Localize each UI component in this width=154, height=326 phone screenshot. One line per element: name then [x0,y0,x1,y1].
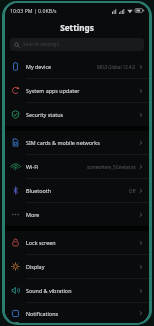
staticText: MIUI Global 12.4.0 [97,64,136,70]
staticText: somewhere_5Gnetwork [87,164,136,170]
other: Open Security status [138,112,144,118]
staticText: Sound & vibration [26,287,72,294]
staticText: Wi-Fi [26,163,39,170]
staticText: Lock screen [26,239,56,246]
staticText: Notifications [26,310,59,317]
other: Open System apps updater [138,88,144,94]
staticText: Settings [60,22,94,33]
other: Open More [138,212,144,218]
other: Open Bluetooth [138,188,144,194]
button[interactable]: My device [5,55,149,79]
other: Open Sound & vibration [138,288,144,294]
button[interactable]: SIM cards & mobile networks [5,131,149,155]
staticText: Off [129,188,136,194]
button[interactable]: Lock screen [5,231,149,255]
button[interactable]: Security status [5,103,149,126]
staticText: Bluetooth [26,187,52,194]
button[interactable]: Display [5,255,149,279]
staticText: System apps updater [26,87,80,94]
other: Open Wi-Fi [138,164,144,170]
staticText: Search settings [23,41,59,48]
button[interactable]: Bluetooth [5,179,149,203]
staticText: Security status [26,111,64,118]
other: Open SIM cards & mobile networks [138,140,144,146]
other: Open Lock screen [138,240,144,246]
button[interactable]: System apps updater [5,79,149,103]
other: Open Display [138,264,144,270]
staticText: More [26,211,40,218]
button[interactable]: Wi-Fi [5,155,149,179]
other: Open My device [138,64,144,70]
button[interactable]: Search settings [10,38,144,51]
button[interactable]: More [5,203,149,226]
staticText: My device [26,63,52,70]
staticText: SIM cards & mobile networks [26,139,100,146]
button[interactable]: Sound & vibration [5,279,149,303]
other: Open Notifications [138,310,144,316]
staticText: 10:03 PM | 0.0KB/s [10,7,57,14]
staticText: Display [26,263,45,270]
button[interactable]: Notifications [5,303,149,323]
